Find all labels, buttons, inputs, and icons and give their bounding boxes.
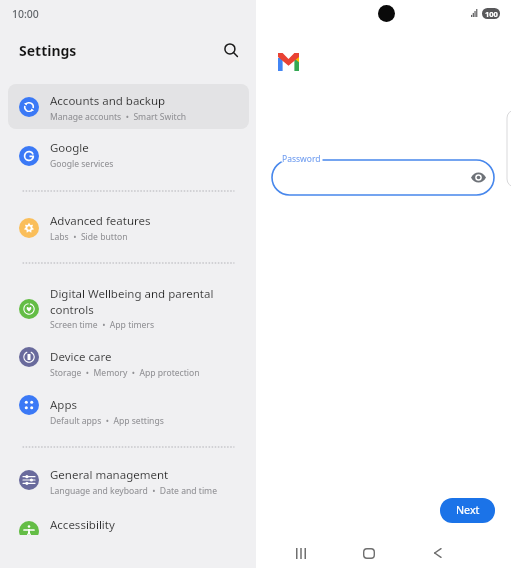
staticText: Storage • Memory • App protection (50, 367, 200, 379)
staticText: 100 (485, 9, 498, 19)
button[interactable]: Accessibility (8, 510, 249, 535)
button[interactable]: Digital Wellbeing and parental controls (8, 278, 249, 340)
staticText: Screen time • App timers (50, 319, 154, 331)
staticText: Password (282, 153, 321, 165)
staticText: Manage accounts • Smart Switch (50, 111, 187, 123)
button[interactable]: Show password (471, 168, 486, 187)
staticText: Settings (19, 41, 77, 60)
staticText: Apps (50, 397, 78, 413)
button[interactable]: General management (8, 460, 249, 505)
staticText: Google services (50, 158, 114, 170)
button[interactable]: Next (440, 498, 495, 523)
staticText: Next (456, 503, 480, 518)
staticText: Accounts and backup (50, 93, 166, 109)
staticText: Accessibility (50, 517, 115, 533)
staticText: Digital Wellbeing and parental controls (50, 286, 214, 317)
staticText: Advanced features (50, 213, 151, 229)
staticText: 10:00 (12, 7, 39, 21)
staticText: Default apps • App settings (50, 415, 164, 427)
button[interactable]: Advanced features (8, 205, 249, 250)
button[interactable]: Device care (8, 340, 249, 385)
staticText: Device care (50, 349, 112, 365)
staticText: General management (50, 467, 169, 483)
button[interactable]: Google (8, 133, 249, 178)
staticText: Labs • Side button (50, 231, 128, 243)
button[interactable]: Search (219, 38, 243, 62)
button[interactable]: Recents (285, 542, 317, 564)
button[interactable]: Back (421, 542, 453, 564)
staticText: Google (50, 140, 89, 156)
staticText: Language and keyboard • Date and time (50, 485, 217, 497)
button[interactable]: Home (353, 542, 385, 564)
button[interactable]: Accounts and backup (8, 84, 249, 129)
button[interactable]: Apps (8, 388, 249, 433)
